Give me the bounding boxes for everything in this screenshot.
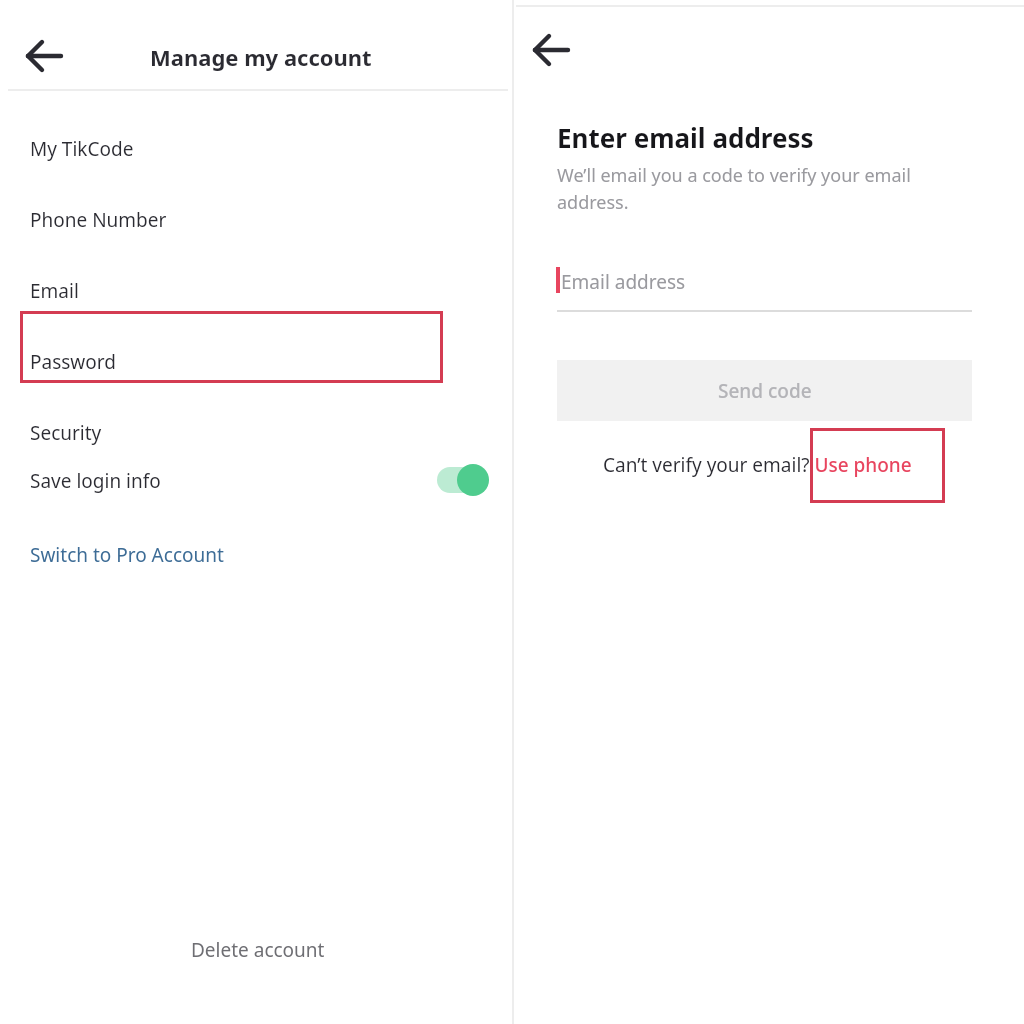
button[interactable]: Save login info xyxy=(0,455,512,507)
staticText: Enter email address xyxy=(557,120,814,155)
staticText: Phone Number xyxy=(30,207,167,233)
staticText: Manage my account xyxy=(150,42,372,72)
button[interactable]: Back xyxy=(521,24,583,76)
staticText: We’ll email you a code to verify your em… xyxy=(557,163,911,214)
staticText: Security xyxy=(30,420,102,446)
button[interactable]: Send code xyxy=(557,360,972,421)
staticText: Switch to Pro Account xyxy=(30,542,224,568)
staticText: My TikCode xyxy=(30,136,134,162)
button[interactable]: Delete account xyxy=(150,928,366,972)
staticText: Email address xyxy=(561,269,686,295)
staticText: Save login info xyxy=(30,468,161,494)
button[interactable]: Back xyxy=(14,30,76,82)
button[interactable] xyxy=(813,440,941,490)
button[interactable]: Switch to Pro Account xyxy=(0,531,300,579)
button[interactable]: My TikCode xyxy=(0,113,512,184)
button[interactable]: Phone Number xyxy=(0,184,512,255)
staticText: Password xyxy=(30,349,116,375)
staticText: Delete account xyxy=(191,937,325,963)
button[interactable]: Email xyxy=(0,255,512,326)
button[interactable]: Security xyxy=(0,397,512,468)
staticText: Email xyxy=(30,278,79,304)
staticText: Send code xyxy=(718,378,812,404)
staticText: Can’t verify your email? Use phone xyxy=(603,452,912,478)
button[interactable]: Email address xyxy=(557,258,972,310)
button[interactable]: Password xyxy=(0,326,512,397)
